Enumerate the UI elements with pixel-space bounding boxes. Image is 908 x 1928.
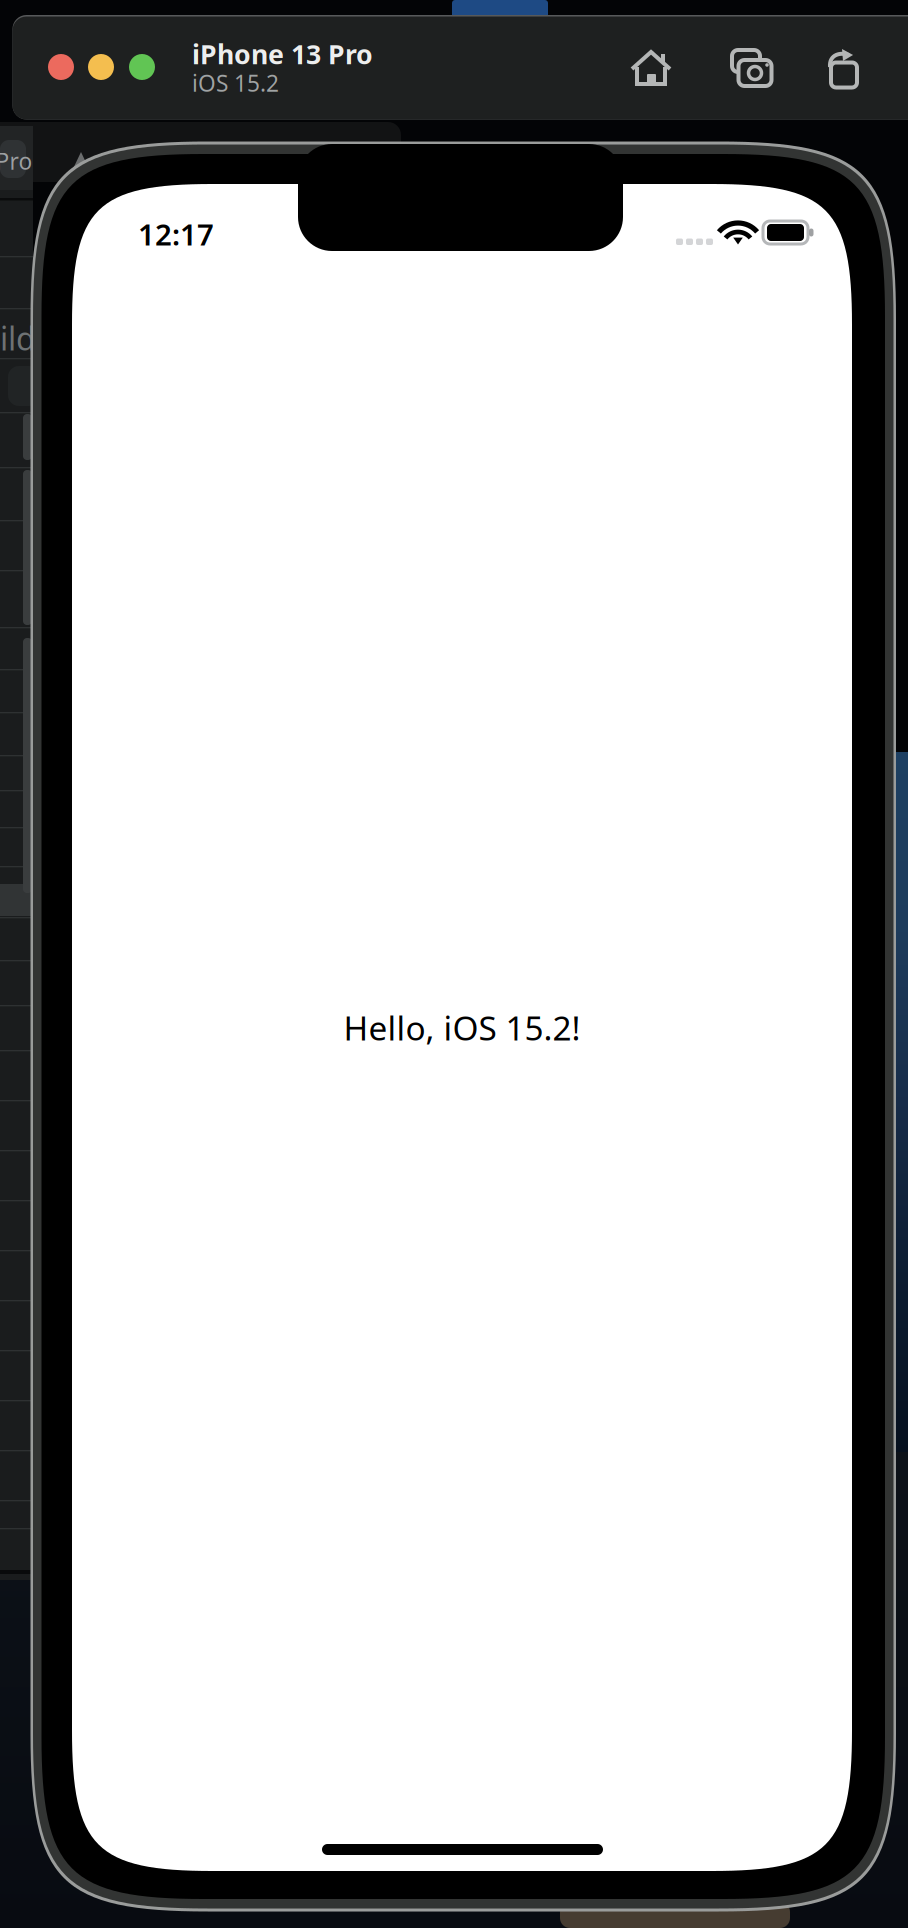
staticText: iOS 15.2 [192,68,279,98]
staticText: iPhone 13 Pro [192,36,373,72]
staticText: Hello, iOS 15.2! [343,1005,580,1050]
button[interactable]: Home [630,46,672,88]
button[interactable]: Minimize [88,54,114,80]
staticText: 12:17 [138,214,214,253]
button[interactable]: Rotate [821,46,863,88]
staticText: uild [0,317,36,359]
button[interactable]: Screenshot [730,46,772,88]
staticText: Pro [0,146,32,176]
button[interactable]: Close [48,54,74,80]
button[interactable]: Zoom [129,54,155,80]
